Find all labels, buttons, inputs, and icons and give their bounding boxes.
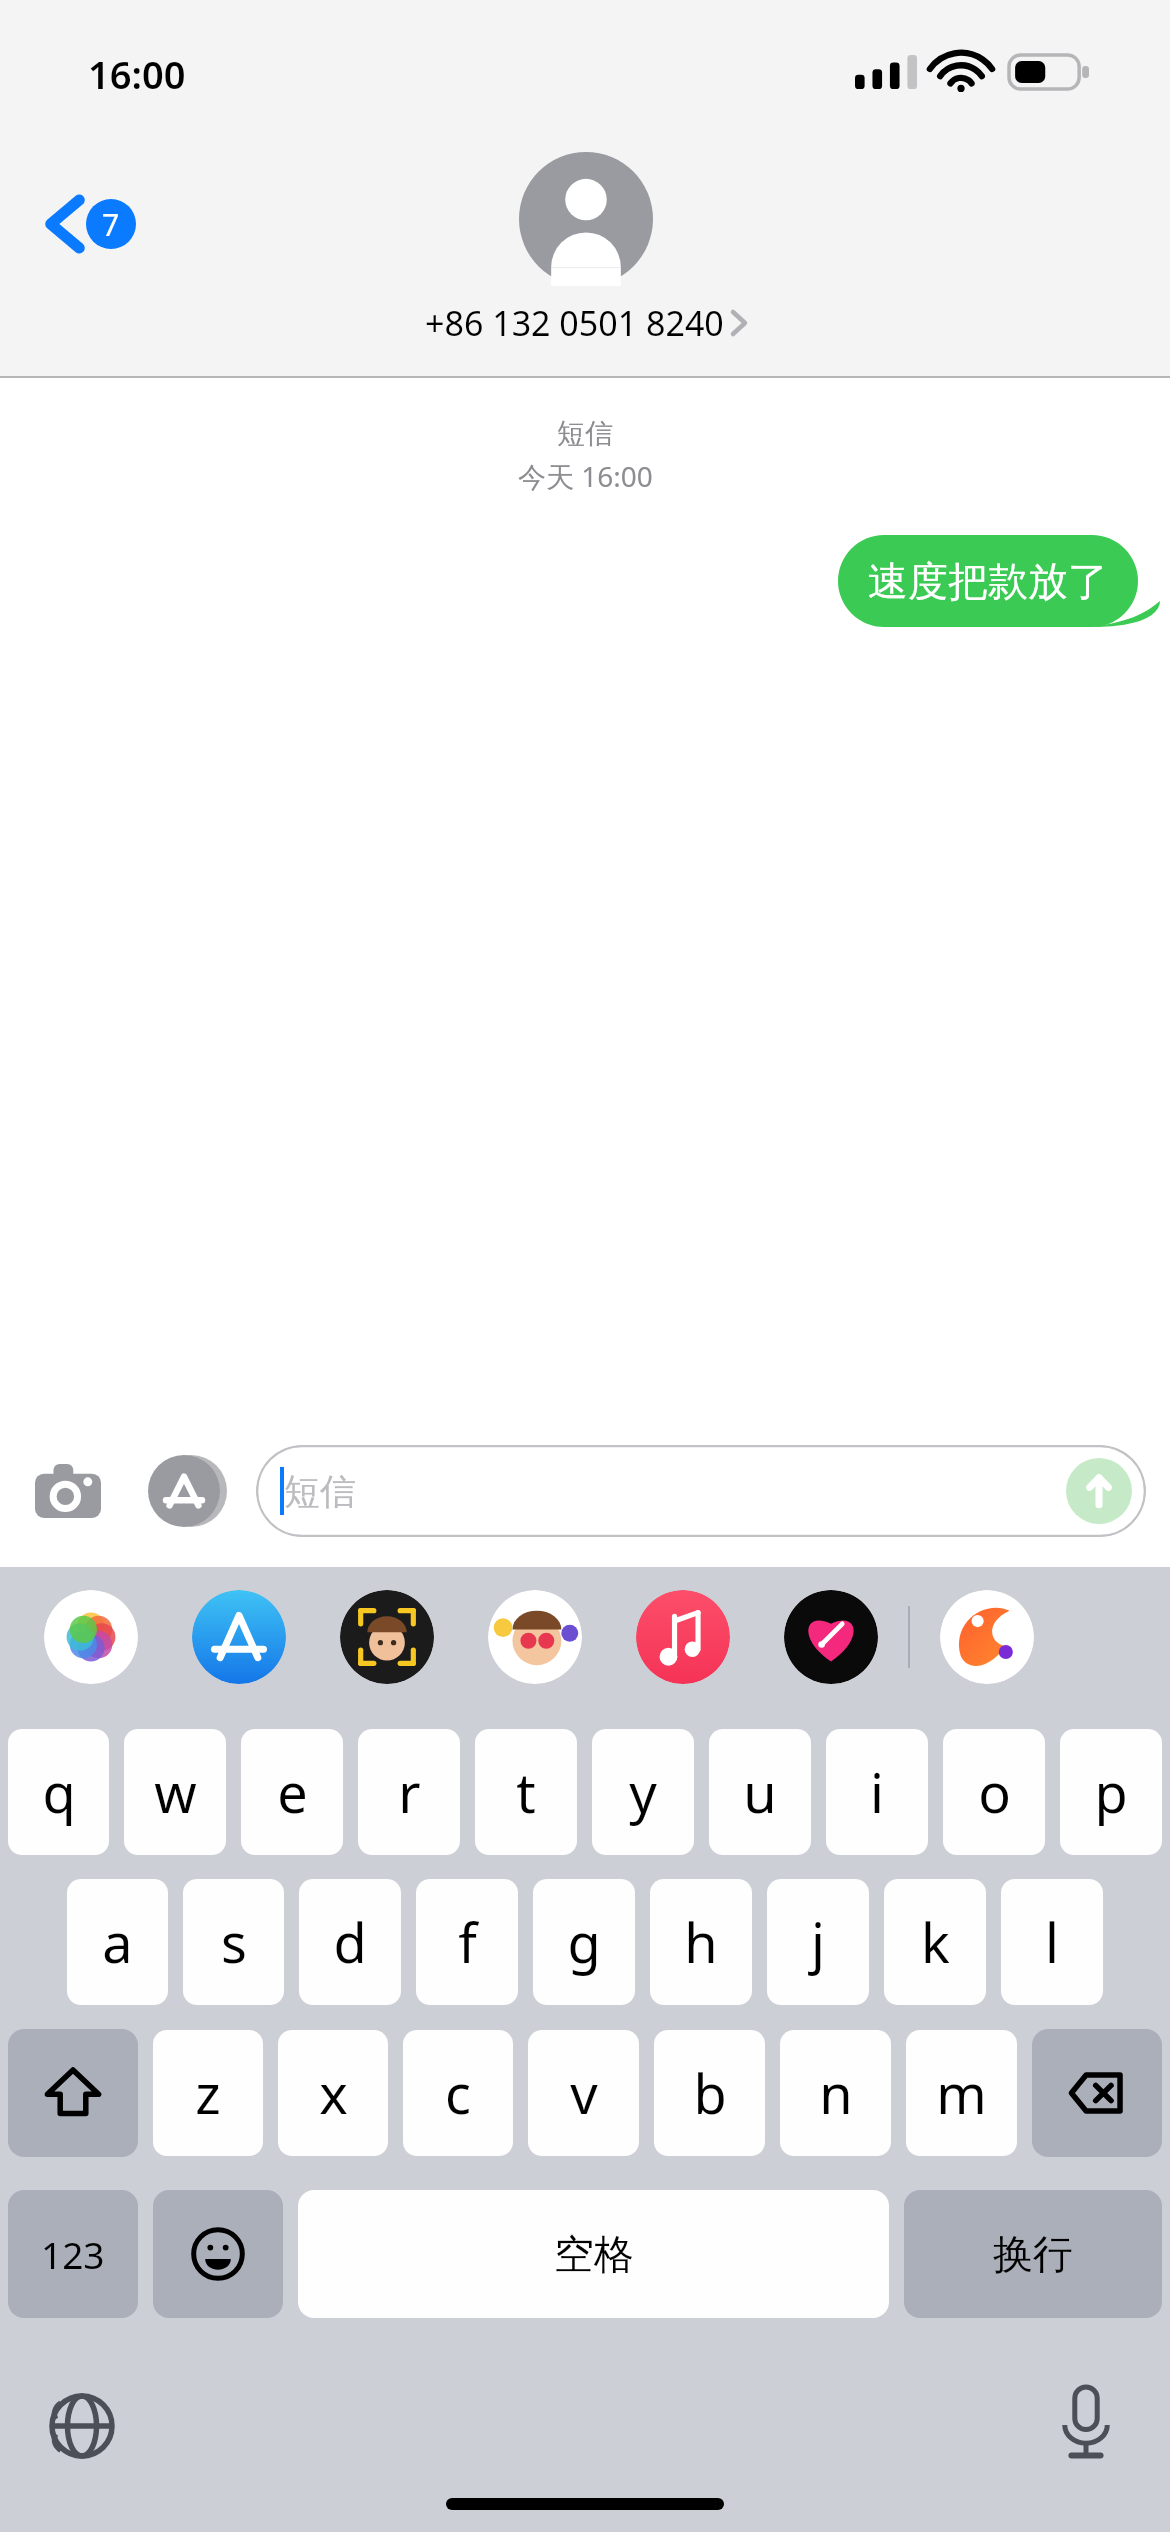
button[interactable]: l: [1001, 1879, 1103, 2005]
staticText: 16:00: [88, 48, 186, 100]
staticText: l: [1045, 1905, 1059, 1979]
button[interactable]: App: [940, 1590, 1034, 1684]
button[interactable]: Emoji: [153, 2190, 283, 2318]
button[interactable]: x: [278, 2030, 388, 2156]
button[interactable]: Send: [1066, 1458, 1132, 1524]
staticText: w: [154, 1755, 197, 1829]
staticText: d: [333, 1905, 367, 1979]
button[interactable]: w: [124, 1729, 226, 1855]
staticText: r: [398, 1755, 421, 1829]
button[interactable]: j: [767, 1879, 869, 2005]
staticText: m: [936, 2056, 987, 2130]
button[interactable]: App: [784, 1590, 878, 1684]
staticText: 今天 16:00: [518, 457, 653, 495]
button[interactable]: h: [650, 1879, 752, 2005]
button[interactable]: App: [44, 1590, 138, 1684]
button[interactable]: f: [416, 1879, 518, 2005]
staticText: o: [978, 1755, 1011, 1829]
button[interactable]: n: [780, 2030, 891, 2156]
button[interactable]: z: [153, 2030, 263, 2156]
button[interactable]: 换行: [904, 2190, 1162, 2318]
staticText: z: [195, 2056, 221, 2130]
button[interactable]: g: [533, 1879, 635, 2005]
staticText: y: [629, 1755, 657, 1829]
button[interactable]: m: [906, 2030, 1017, 2156]
staticText: 空格: [554, 2229, 634, 2279]
button[interactable]: b: [654, 2030, 765, 2156]
button[interactable]: e: [241, 1729, 343, 1855]
button[interactable]: App: [488, 1590, 582, 1684]
staticText: b: [693, 2056, 727, 2130]
button[interactable]: 123: [8, 2190, 138, 2318]
button[interactable]: App: [636, 1590, 730, 1684]
staticText: s: [221, 1905, 247, 1979]
staticText: u: [743, 1755, 777, 1829]
staticText: x: [319, 2056, 348, 2130]
staticText: c: [445, 2056, 471, 2130]
staticText: i: [870, 1755, 884, 1829]
staticText: t: [516, 1755, 536, 1829]
button[interactable]: y: [592, 1729, 694, 1855]
staticText: 7: [102, 204, 120, 245]
staticText: v: [570, 2056, 598, 2130]
button[interactable]: o: [943, 1729, 1045, 1855]
button[interactable]: +86 132 0501 8240: [413, 152, 758, 346]
staticText: +86 132 0501 8240: [425, 300, 724, 346]
button[interactable]: App: [192, 1590, 286, 1684]
staticText: k: [921, 1905, 950, 1979]
button[interactable]: v: [528, 2030, 639, 2156]
button[interactable]: s: [183, 1879, 284, 2005]
staticText: g: [567, 1905, 601, 1979]
button[interactable]: 速度把款放了: [838, 535, 1138, 627]
button[interactable]: Dictation: [1042, 2378, 1130, 2466]
button[interactable]: d: [299, 1879, 401, 2005]
button[interactable]: k: [884, 1879, 986, 2005]
staticText: q: [42, 1755, 76, 1829]
staticText: 换行: [993, 2229, 1073, 2279]
button[interactable]: 空格: [298, 2190, 889, 2318]
staticText: n: [819, 2056, 853, 2130]
staticText: h: [684, 1905, 718, 1979]
button[interactable]: App: [340, 1590, 434, 1684]
button[interactable]: p: [1060, 1729, 1162, 1855]
staticText: j: [811, 1905, 825, 1979]
button[interactable]: Shift: [8, 2029, 138, 2157]
staticText: 123: [41, 2229, 105, 2279]
button[interactable]: Camera: [24, 1447, 112, 1535]
staticText: a: [102, 1905, 133, 1979]
staticText: p: [1094, 1755, 1128, 1829]
button[interactable]: q: [8, 1729, 109, 1855]
button[interactable]: a: [67, 1879, 168, 2005]
button[interactable]: Back, 7 unread: [40, 190, 144, 258]
button[interactable]: Delete: [1032, 2029, 1162, 2157]
button[interactable]: Apps: [140, 1447, 228, 1535]
staticText: 短信: [284, 1469, 356, 1514]
button[interactable]: i: [826, 1729, 928, 1855]
button[interactable]: t: [475, 1729, 577, 1855]
button[interactable]: Change keyboard: [38, 2382, 126, 2470]
staticText: f: [458, 1905, 477, 1979]
staticText: 短信: [557, 416, 613, 451]
button[interactable]: c: [403, 2030, 513, 2156]
button[interactable]: r: [358, 1729, 460, 1855]
button[interactable]: 短信: [256, 1445, 1146, 1537]
button[interactable]: u: [709, 1729, 811, 1855]
staticText: e: [277, 1755, 308, 1829]
